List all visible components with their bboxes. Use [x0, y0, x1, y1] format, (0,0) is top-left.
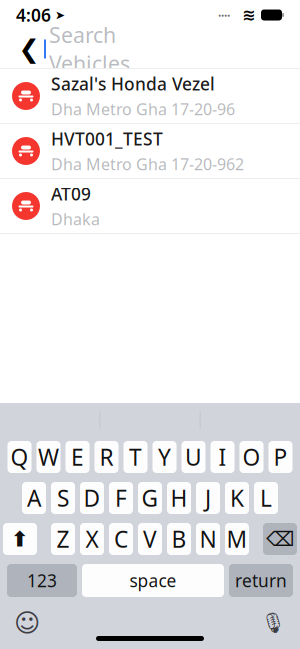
button[interactable]: U [181, 441, 205, 473]
button[interactable]: K [225, 482, 249, 514]
button[interactable]: Dictation [258, 608, 288, 638]
staticText: 🎙 [260, 612, 285, 634]
button[interactable]: X [80, 523, 104, 555]
staticText: Dhaka [51, 208, 100, 230]
button[interactable]: M [225, 523, 249, 555]
button[interactable]: E [65, 441, 89, 473]
button[interactable]: A [22, 482, 46, 514]
staticText: K [230, 483, 244, 513]
staticText: S [57, 483, 69, 513]
button[interactable]: Back [14, 31, 44, 67]
button[interactable]: Shift [3, 523, 37, 555]
staticText: Sazal's Honda Vezel [51, 72, 215, 95]
button[interactable]: P [268, 441, 292, 473]
staticText: P [273, 442, 287, 472]
staticText: Y [158, 442, 171, 472]
button[interactable]: Q [7, 441, 31, 473]
button[interactable]: Y [152, 441, 176, 473]
button[interactable]: T [123, 441, 147, 473]
staticText: ⬆ [11, 527, 29, 551]
button[interactable]: HVT001_TEST [0, 124, 300, 178]
button[interactable]: V [138, 523, 162, 555]
staticText: Dha Metro Gha 17-20-96 [51, 98, 235, 120]
staticText: AT09 [51, 182, 91, 205]
button[interactable]: return [229, 564, 293, 597]
staticText: U [185, 442, 202, 472]
button[interactable]: AT09 [0, 179, 300, 233]
staticText: F [115, 483, 127, 513]
button[interactable]: J [196, 482, 220, 514]
button[interactable]: R [94, 441, 118, 473]
staticText: I [218, 442, 226, 472]
button[interactable]: W [36, 441, 60, 473]
staticText: space [129, 569, 176, 592]
staticText: 4:06 [16, 3, 51, 26]
button[interactable]: B [167, 523, 191, 555]
button[interactable]: S [51, 482, 75, 514]
staticText: G [141, 483, 158, 513]
staticText: Dha Metro Gha 17-20-962 [51, 153, 244, 175]
staticText: J [205, 483, 211, 513]
staticText: C [114, 524, 128, 554]
staticText: L [260, 483, 272, 513]
staticText: R [99, 442, 113, 472]
staticText: H [170, 483, 187, 513]
button[interactable]: Search Vehicles [44, 31, 165, 67]
staticText: HVT001_TEST [51, 127, 163, 150]
staticText: A [27, 483, 41, 513]
button[interactable]: G [138, 482, 162, 514]
staticText: return [235, 569, 287, 592]
staticText: Z [56, 524, 69, 554]
staticText: ≋ [230, 6, 261, 24]
staticText: M [226, 524, 247, 554]
staticText: W [38, 442, 59, 472]
staticText: T [129, 442, 142, 472]
staticText: Search Vehicles [49, 21, 130, 77]
staticText: 123 [27, 569, 57, 592]
button[interactable]: I [210, 441, 234, 473]
button[interactable]: H [167, 482, 191, 514]
staticText: B [171, 524, 186, 554]
staticText: D [83, 483, 100, 513]
button[interactable]: D [80, 482, 104, 514]
staticText: O [242, 442, 260, 472]
button[interactable]: F [109, 482, 133, 514]
staticText: ➤ [51, 8, 65, 22]
staticText: N [199, 524, 216, 554]
button[interactable]: L [254, 482, 278, 514]
button[interactable]: 123 [7, 564, 77, 597]
button[interactable]: Sazal's Honda Vezel [0, 69, 300, 123]
staticText: X [85, 524, 98, 554]
button[interactable]: O [239, 441, 263, 473]
staticText: Q [10, 442, 28, 472]
button[interactable]: Delete [263, 523, 297, 555]
staticText: ⌫ [266, 528, 294, 550]
staticText: V [143, 524, 157, 554]
staticText: ❮ [18, 35, 39, 63]
button[interactable]: Emoji [12, 608, 42, 638]
button[interactable]: C [109, 523, 133, 555]
button[interactable]: Z [51, 523, 75, 555]
staticText: ···· [218, 7, 230, 23]
button[interactable]: N [196, 523, 220, 555]
staticText: E [71, 442, 84, 472]
button[interactable]: space [82, 564, 224, 597]
staticText: ☺ [14, 609, 40, 637]
